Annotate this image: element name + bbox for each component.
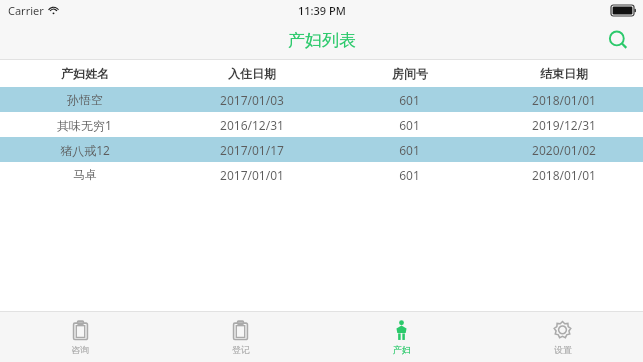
staticText: Carrier — [8, 3, 44, 18]
staticText: 601 — [399, 117, 420, 133]
staticText: 2018/01/01 — [532, 92, 596, 108]
staticText: 咨询 — [71, 344, 89, 355]
staticText: 2017/01/17 — [220, 142, 284, 158]
staticText: 2017/01/01 — [220, 167, 284, 183]
staticText: 601 — [399, 92, 420, 108]
staticText: 2018/01/01 — [532, 167, 596, 183]
staticText: 2019/12/31 — [532, 117, 596, 133]
button[interactable]: 马卓 — [0, 162, 643, 187]
staticText: 601 — [399, 167, 420, 183]
staticText: 登记 — [232, 344, 250, 355]
staticText: 孙悟空 — [67, 92, 103, 107]
staticText: 其味无穷1 — [57, 117, 112, 133]
button[interactable]: 设置 — [482, 312, 643, 362]
button[interactable]: 其味无穷1 — [0, 112, 643, 137]
staticText: 2016/12/31 — [220, 117, 284, 133]
staticText: 设置 — [554, 344, 572, 355]
staticText: 房间号 — [392, 66, 428, 81]
button[interactable]: 产妇 — [321, 312, 482, 362]
staticText: 2017/01/03 — [220, 92, 284, 108]
staticText: 产妇列表 — [288, 30, 356, 51]
staticText: 入住日期 — [228, 66, 276, 81]
staticText: 马卓 — [73, 167, 97, 182]
staticText: 601 — [399, 142, 420, 158]
staticText: 猪八戒12 — [60, 142, 110, 158]
staticText: 产妇 — [393, 344, 411, 355]
button[interactable]: Search — [601, 23, 635, 57]
button[interactable]: 孙悟空 — [0, 87, 643, 112]
button[interactable]: 猪八戒12 — [0, 137, 643, 162]
staticText: 结束日期 — [540, 66, 588, 81]
button[interactable]: 咨询 — [0, 312, 160, 362]
staticText: 2020/01/02 — [532, 142, 596, 158]
button[interactable]: 登记 — [160, 312, 321, 362]
staticText: 11:39 PM — [298, 3, 346, 18]
staticText: 产妇姓名 — [61, 66, 109, 81]
